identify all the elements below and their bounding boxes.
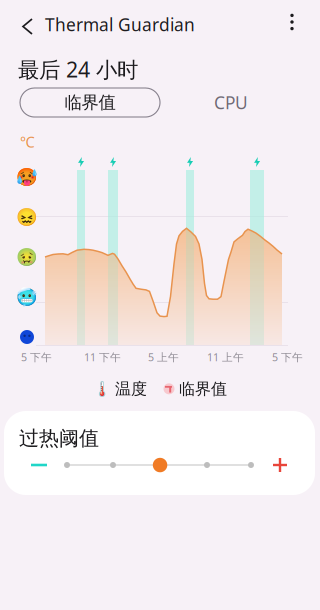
button[interactable]: Back: [11, 7, 44, 46]
staticText: 11 上午: [207, 350, 244, 364]
staticText: 临界值: [64, 92, 115, 113]
staticText: 5 下午: [21, 350, 52, 364]
staticText: ℃: [20, 132, 35, 151]
button[interactable]: Increase threshold: [261, 450, 299, 480]
staticText: 11 下午: [84, 350, 121, 364]
staticText: 5 下午: [272, 350, 303, 364]
staticText: 过热阈值: [19, 426, 99, 451]
staticText: 🤢: [16, 247, 38, 267]
button[interactable]: 临界值: [20, 88, 160, 117]
staticText: 🥵: [16, 167, 38, 187]
button[interactable]: Decrease threshold: [20, 450, 58, 480]
staticText: 🌡️: [93, 380, 111, 397]
button[interactable]: More options: [274, 4, 310, 40]
staticText: 温度: [115, 379, 147, 399]
staticText: 最后 24 小时: [18, 55, 138, 83]
staticText: CPU: [214, 91, 248, 114]
staticText: 临界值: [179, 379, 227, 399]
staticText: Thermal Guardian: [45, 13, 195, 36]
staticText: 😖: [16, 207, 38, 227]
staticText: 🥶: [16, 287, 38, 307]
button[interactable]: CPU: [196, 88, 266, 117]
staticText: 5 上午: [148, 350, 179, 364]
